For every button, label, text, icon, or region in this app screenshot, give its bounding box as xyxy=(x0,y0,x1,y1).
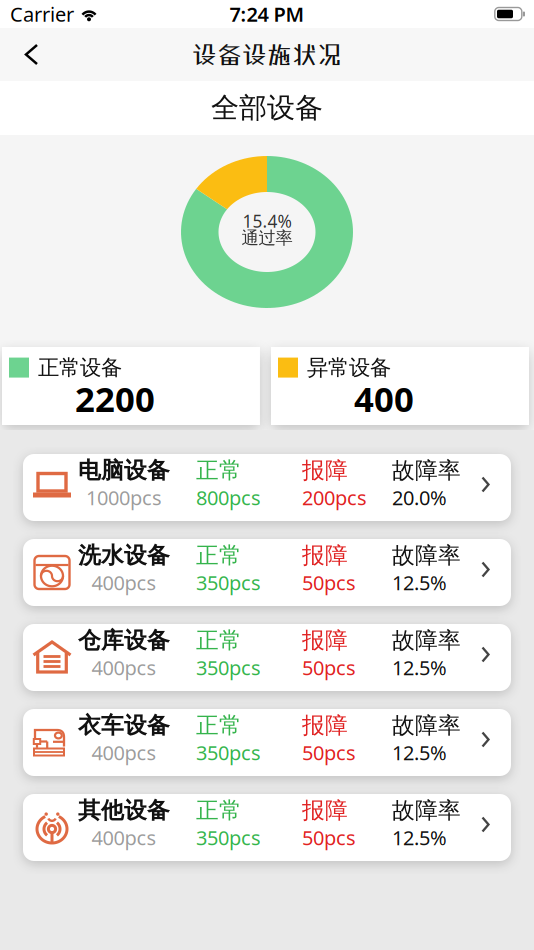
button[interactable]: Back xyxy=(0,29,38,79)
staticText: 全部设备 xyxy=(211,91,323,125)
staticText: 12.5% xyxy=(392,824,447,851)
staticText: 故障率 xyxy=(392,627,461,654)
staticText: 报障 xyxy=(302,542,348,569)
staticText: 报障 xyxy=(302,712,348,739)
staticText: 正常 xyxy=(196,457,242,484)
staticText: 350pcs xyxy=(196,739,261,766)
staticText: 洗水设备 xyxy=(78,542,170,569)
staticText: 400pcs xyxy=(91,654,156,681)
staticText: 1000pcs xyxy=(86,484,162,511)
button[interactable]: 衣车设备 xyxy=(23,709,511,776)
staticText: 正常 xyxy=(196,627,242,654)
staticText: 200pcs xyxy=(302,484,367,511)
staticText: 报障 xyxy=(302,457,348,484)
button[interactable]: 其他设备 xyxy=(23,794,511,861)
staticText: 50pcs xyxy=(302,569,356,596)
staticText: 20.0% xyxy=(392,484,447,511)
staticText: 50pcs xyxy=(302,654,356,681)
staticText: 15.4% xyxy=(242,209,291,232)
staticText: 400pcs xyxy=(91,739,156,766)
button[interactable]: 仓库设备 xyxy=(23,624,511,691)
staticText: 50pcs xyxy=(302,824,356,851)
staticText: 正常 xyxy=(196,797,242,824)
staticText: 故障率 xyxy=(392,542,461,569)
staticText: 仓库设备 xyxy=(78,627,170,654)
staticText: 正常 xyxy=(196,712,242,739)
staticText: 电脑设备 xyxy=(78,457,170,484)
button[interactable]: 洗水设备 xyxy=(23,539,511,606)
staticText: 正常 xyxy=(196,542,242,569)
staticText: 报障 xyxy=(302,797,348,824)
staticText: Carrier xyxy=(10,1,74,27)
staticText: 衣车设备 xyxy=(78,712,170,739)
staticText: 12.5% xyxy=(392,654,447,681)
staticText: 400pcs xyxy=(91,569,156,596)
staticText: 12.5% xyxy=(392,739,447,766)
staticText: 400pcs xyxy=(91,824,156,851)
staticText: 报障 xyxy=(302,627,348,654)
staticText: 故障率 xyxy=(392,797,461,824)
staticText: 50pcs xyxy=(302,739,356,766)
staticText: 正常设备 xyxy=(38,354,122,381)
staticText: 400 xyxy=(354,375,414,421)
staticText: 350pcs xyxy=(196,824,261,851)
staticText: 12.5% xyxy=(392,569,447,596)
staticText: 7:24 PM xyxy=(229,1,304,27)
staticText: 350pcs xyxy=(196,569,261,596)
staticText: 其他设备 xyxy=(78,797,170,824)
staticText: 故障率 xyxy=(392,457,461,484)
button[interactable]: 电脑设备 xyxy=(23,454,511,521)
staticText: 故障率 xyxy=(392,712,461,739)
staticText: 2200 xyxy=(75,375,155,421)
staticText: 异常设备 xyxy=(307,354,391,381)
staticText: 设备设施状况 xyxy=(192,40,342,69)
staticText: 800pcs xyxy=(196,484,261,511)
staticText: 350pcs xyxy=(196,654,261,681)
staticText: 通过率 xyxy=(241,227,292,249)
